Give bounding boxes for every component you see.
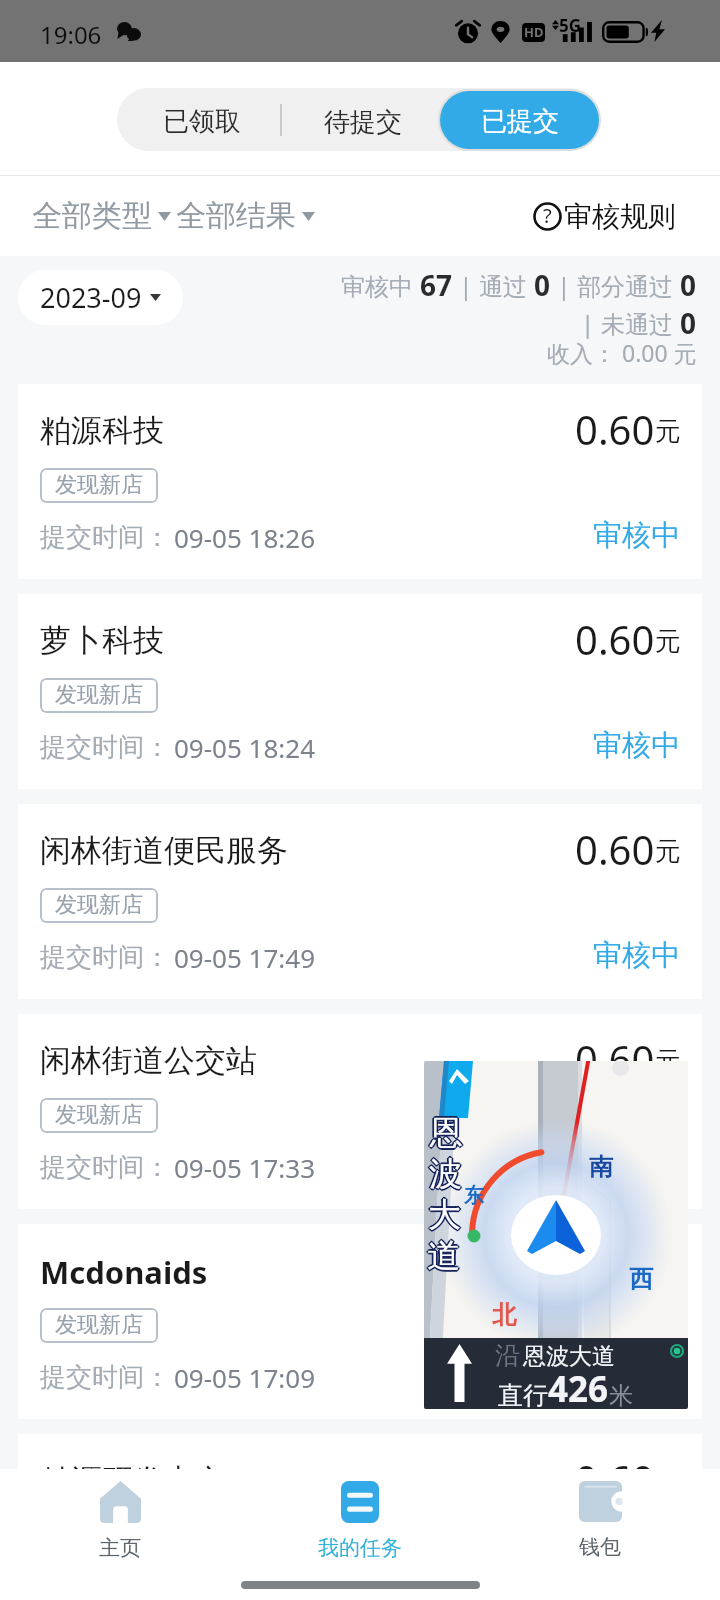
staticText: 发现新店 <box>55 1521 143 1549</box>
button[interactable]: 2023-09 <box>18 270 183 325</box>
staticText: 0 <box>680 266 697 304</box>
staticText: 2023-09 <box>40 279 142 316</box>
staticText: 发现新店 <box>55 891 143 919</box>
staticText: 0.60 <box>575 402 655 456</box>
staticText: 发现新店 <box>55 471 143 499</box>
staticText: 恩 <box>430 1112 463 1154</box>
staticText: 大 <box>428 1194 461 1236</box>
button[interactable]: 粕源科技 <box>18 384 702 579</box>
staticText: 波 <box>430 1154 463 1196</box>
staticText: 恩 <box>428 1112 461 1154</box>
staticText: 已领取 <box>163 105 241 138</box>
staticText: 元 <box>655 1255 681 1288</box>
staticText: 0.60 <box>575 1242 655 1296</box>
staticText: 钱包 <box>579 1534 621 1560</box>
staticText: 0 <box>534 266 551 304</box>
staticText: 大 <box>429 1195 462 1237</box>
staticText: 0.60 <box>575 1032 655 1086</box>
staticText: 闲林街道便民服务 <box>40 831 288 870</box>
staticText: 元 <box>655 415 681 448</box>
staticText: 南 <box>589 1152 613 1182</box>
staticText: 恩 <box>430 1110 463 1152</box>
staticText: 道 <box>425 1235 458 1277</box>
staticText: 道 <box>427 1233 460 1275</box>
staticText: 波 <box>431 1153 464 1195</box>
staticText: 0.60 <box>575 822 655 876</box>
staticText: 09-05 17:49 <box>174 940 316 975</box>
staticText: ? <box>543 202 552 229</box>
staticText: 恩 <box>430 1114 463 1156</box>
staticText: 波 <box>430 1152 463 1194</box>
staticText: 审核中 <box>593 937 680 974</box>
staticText: 波 <box>428 1154 461 1196</box>
staticText: 东 <box>464 1183 484 1208</box>
staticText: 波 <box>429 1153 462 1195</box>
staticText: 0.60 <box>575 612 655 666</box>
staticText: 提交时间： <box>40 1361 170 1394</box>
staticText: 恩 <box>431 1113 464 1155</box>
staticText: 审核中 <box>593 727 680 764</box>
staticText: 恩 <box>431 1111 464 1153</box>
staticText: 提交时间： <box>40 1151 170 1184</box>
staticText: 全部结果 <box>176 197 296 235</box>
button[interactable]: 闲林街道便民服务 <box>18 804 702 999</box>
button[interactable]: 闲林街道公交站 <box>18 1014 702 1209</box>
staticText: 恩 <box>432 1112 465 1154</box>
staticText: 大 <box>427 1195 460 1237</box>
staticText: 全部类型 <box>32 197 152 235</box>
staticText: 提交时间： <box>40 521 170 554</box>
button[interactable]: 已提交 <box>440 91 599 149</box>
button[interactable]: 全部类型 <box>32 197 176 235</box>
staticText: 大 <box>429 1193 462 1235</box>
staticText: 待提交 <box>324 106 402 139</box>
button[interactable]: 已领取 <box>117 88 280 151</box>
button[interactable]: 钱包 <box>480 1469 720 1560</box>
staticText: 收入： 0.00 元 <box>547 337 697 368</box>
staticText: 北 <box>492 1300 516 1330</box>
staticText: 09-05 18:24 <box>174 730 316 765</box>
button[interactable]: 主页 <box>0 1469 240 1561</box>
button[interactable]: Navigation <box>424 1061 688 1409</box>
staticText: 09-05 17:33 <box>174 1150 316 1185</box>
button[interactable]: 待提交 <box>282 88 437 151</box>
staticText: 大 <box>428 1192 461 1234</box>
button[interactable]: 萝卜科技 <box>18 594 702 789</box>
staticText: 恩波大道 <box>523 1342 615 1371</box>
staticText: 米 <box>609 1381 633 1409</box>
button[interactable]: Mcdonaids <box>18 1224 702 1419</box>
staticText: 道 <box>428 1234 461 1276</box>
staticText: 直行 <box>498 1380 548 1409</box>
staticText: 审核中 <box>593 1147 680 1184</box>
staticText: 19:06 <box>40 18 102 51</box>
staticText: 萝卜科技 <box>40 621 164 660</box>
staticText: 元 <box>655 1045 681 1078</box>
staticText: 审核中 <box>341 269 420 302</box>
staticText: 提交时间： <box>40 731 170 764</box>
staticText: 道 <box>427 1235 460 1277</box>
button[interactable]: 我的任务 <box>240 1469 480 1561</box>
button[interactable]: 粕源研发中心 <box>18 1434 702 1600</box>
staticText: 主页 <box>99 1535 141 1561</box>
staticText: 闲林街道公交站 <box>40 1041 257 1080</box>
staticText: 道 <box>427 1237 460 1279</box>
staticText: 道 <box>428 1236 461 1278</box>
staticText: 大 <box>428 1196 461 1238</box>
staticText: 09-05 18:26 <box>174 520 316 555</box>
staticText: 审核中 <box>593 517 680 554</box>
button[interactable]: ? <box>533 199 676 234</box>
staticText: 5G <box>559 14 582 37</box>
button[interactable]: 全部结果 <box>176 197 315 235</box>
staticText: 提交时间： <box>40 941 170 974</box>
staticText: 恩 <box>429 1113 462 1155</box>
staticText: 已提交 <box>481 105 559 138</box>
staticText: 大 <box>430 1194 463 1236</box>
staticText: 粕源科技 <box>40 411 164 450</box>
staticText: 粕源研发中心 <box>40 1461 226 1500</box>
staticText: | <box>581 307 601 340</box>
staticText: 波 <box>429 1155 462 1197</box>
staticText: 波 <box>427 1153 460 1195</box>
staticText: 大 <box>427 1193 460 1235</box>
